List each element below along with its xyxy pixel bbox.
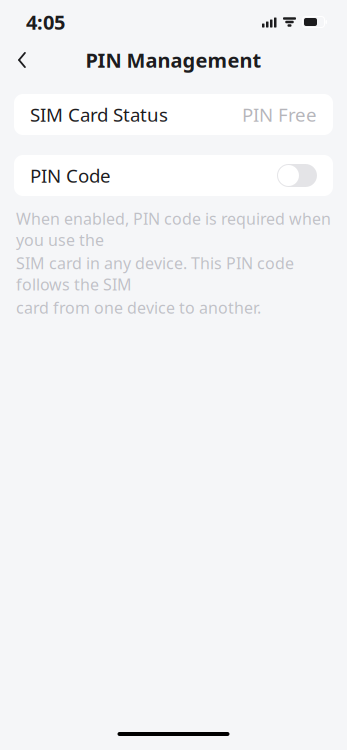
staticText: SIM card in any device. This PIN code fo…: [16, 252, 294, 295]
staticText: PIN Free: [242, 102, 317, 127]
staticText: SIM Card Status: [30, 102, 168, 127]
staticText: 4:05: [26, 9, 65, 35]
staticText: PIN Management: [85, 47, 261, 73]
staticText: When enabled, PIN code is required when …: [16, 208, 331, 250]
staticText: card from one device to another.: [16, 297, 261, 318]
staticText: PIN Code: [30, 163, 111, 188]
button[interactable]: SIM Card Status: [14, 94, 333, 135]
button[interactable]: Back: [0, 38, 44, 82]
button[interactable]: PIN Code: [14, 155, 333, 196]
